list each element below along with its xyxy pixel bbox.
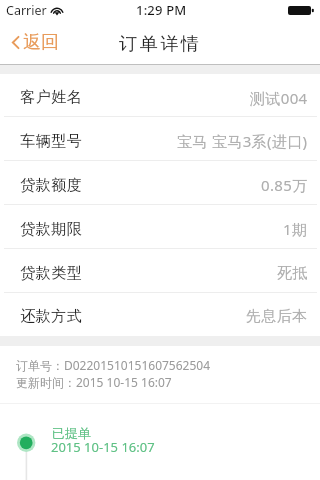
staticText: 1:29 PM [136,1,187,19]
button[interactable]: 返回 [0,23,67,62]
staticText: 贷款期限 [20,220,82,239]
staticText: 死抵 [277,264,308,283]
staticText: 2015 10-15 16:07 [51,438,155,456]
staticText: 1期 [283,219,308,239]
staticText: 订单详情 [119,33,202,56]
staticText: 宝马 宝马3系(进口) [177,131,308,151]
button[interactable]: 客户姓名 [0,74,320,117]
staticText: 已提单 [52,425,91,441]
staticText: 测试004 [250,88,308,108]
button[interactable]: 贷款额度 [0,161,320,205]
staticText: 贷款类型 [20,264,82,283]
staticText: 车辆型号 [20,132,82,151]
staticText: 返回 [23,31,59,54]
staticText: 订单号：D02201510151607562504 [16,357,211,373]
staticText: 更新时间：2015 10-15 16:07 [16,374,172,390]
button[interactable]: 贷款类型 [0,249,320,293]
button[interactable]: 还款方式 [0,293,320,336]
staticText: 还款方式 [20,307,82,326]
button[interactable]: 车辆型号 [0,117,320,161]
button[interactable]: 贷款期限 [0,205,320,249]
staticText: 贷款额度 [20,176,82,195]
staticText: 0.85万 [261,175,308,195]
staticText: Carrier [6,2,47,19]
button[interactable]: 已提单 [0,404,320,480]
staticText: 客户姓名 [20,88,82,107]
staticText: 先息后本 [246,307,308,326]
